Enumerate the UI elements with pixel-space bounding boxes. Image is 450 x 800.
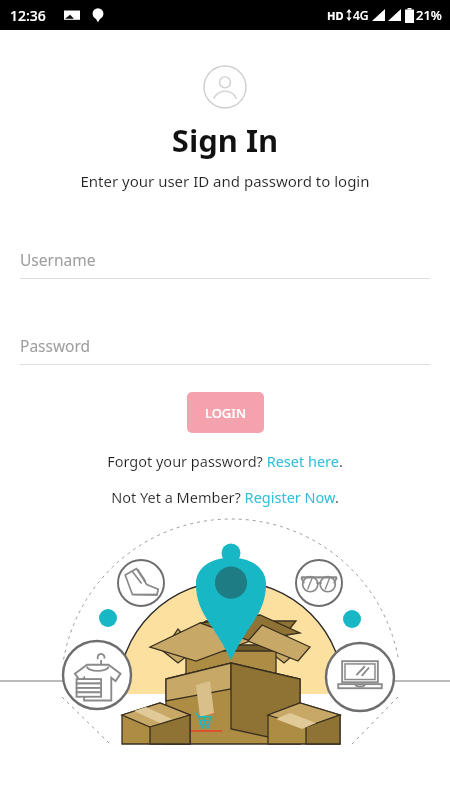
staticText: 4G — [353, 7, 369, 23]
staticText: Sign In — [0, 119, 450, 161]
button[interactable]: LOGIN — [187, 392, 264, 433]
staticText: 21% — [416, 6, 442, 24]
button[interactable]: Not Yet a Member? Register Now. — [111, 487, 339, 507]
staticText: Forgot your password? Reset here. — [107, 451, 343, 471]
staticText: Not Yet a Member? Register Now. — [111, 487, 339, 507]
button[interactable]: Forgot your password? Reset here. — [107, 451, 343, 471]
staticText: Password — [20, 335, 91, 356]
staticText: Username — [20, 249, 96, 270]
staticText: Enter your user ID and password to login — [0, 171, 450, 191]
staticText: HD — [327, 8, 344, 23]
staticText: 12:36 — [10, 6, 46, 25]
staticText: LOGIN — [205, 404, 247, 422]
